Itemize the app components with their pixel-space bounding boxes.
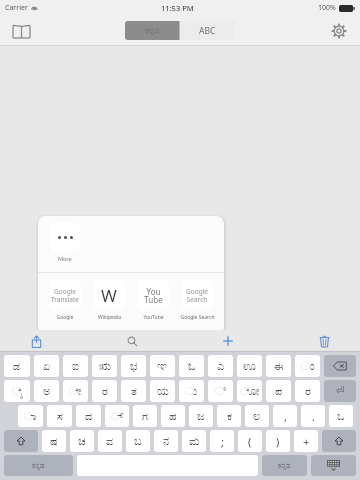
button[interactable]: ಎ: [208, 355, 233, 377]
staticText: ಸ: [57, 411, 63, 422]
staticText: ದ: [85, 411, 93, 422]
staticText: ಜ: [197, 411, 205, 422]
button[interactable]: ;: [210, 430, 234, 452]
button[interactable]: Search: [122, 331, 142, 351]
button[interactable]: ಾ: [18, 405, 43, 427]
staticText: ಡ: [13, 361, 21, 372]
staticText: ಚ: [78, 436, 86, 447]
staticText: ಬ: [134, 436, 142, 447]
button[interactable]: ದ: [76, 405, 101, 427]
button[interactable]: ಷ: [42, 430, 66, 452]
button[interactable]: Return: [324, 380, 356, 402]
button[interactable]: ಮ: [182, 430, 206, 452]
button[interactable]: ): [266, 430, 290, 452]
button[interactable]: ರ: [92, 380, 117, 402]
staticText: ು: [185, 386, 198, 397]
staticText: ,: [284, 409, 287, 424]
button[interactable]: ಹ: [161, 405, 185, 427]
button[interactable]: Shift: [4, 430, 38, 452]
button[interactable]: More: [50, 222, 80, 262]
button[interactable]: ಊ: [237, 355, 262, 377]
button[interactable]: Google Search: [178, 279, 216, 321]
button[interactable]: ಬ: [126, 430, 150, 452]
button[interactable]: ಗ: [133, 405, 157, 427]
button[interactable]: ಚ: [70, 430, 94, 452]
button[interactable]: ಋ: [92, 355, 117, 377]
button[interactable]: ನ: [154, 430, 178, 452]
button[interactable]: Delete: [314, 331, 334, 351]
staticText: ಒ: [337, 411, 345, 422]
button[interactable]: ಏ: [34, 355, 59, 377]
button[interactable]: ವ: [98, 430, 122, 452]
button[interactable]: ಕನ್ನಡ: [4, 455, 73, 476]
button[interactable]: ಐ: [63, 355, 88, 377]
staticText: ಐ: [72, 361, 80, 372]
staticText: ಕನ್ನಡ: [145, 27, 160, 35]
staticText: +: [303, 434, 310, 449]
button[interactable]: ೋ: [237, 380, 262, 402]
staticText: .: [312, 409, 315, 424]
staticText: ರ: [102, 386, 108, 397]
staticText: Google Translate: [51, 287, 79, 304]
staticText: ಅ: [43, 386, 51, 397]
button[interactable]: ಸ: [47, 405, 72, 427]
button[interactable]: Google Translate: [46, 279, 84, 321]
staticText: ೇ: [69, 386, 82, 397]
button[interactable]: ABC: [180, 21, 235, 40]
button[interactable]: Settings: [326, 18, 352, 44]
button[interactable]: .: [301, 405, 325, 427]
button[interactable]: ಓ: [179, 355, 204, 377]
staticText: Carrier: [5, 3, 28, 13]
staticText: ೈ: [12, 386, 23, 397]
staticText: ಞ: [157, 361, 168, 372]
button[interactable]: ಯ: [150, 380, 175, 402]
button[interactable]: ಪ: [266, 380, 291, 402]
button[interactable]: Add: [218, 331, 238, 351]
button[interactable]: Backspace: [324, 355, 356, 377]
button[interactable]: ರ: [295, 380, 320, 402]
staticText: ⏎: [336, 385, 345, 397]
button[interactable]: ಭ: [121, 355, 146, 377]
staticText: ಗ: [142, 411, 148, 422]
button[interactable]: ಕ: [217, 405, 241, 427]
button[interactable]: Share: [26, 331, 46, 351]
button[interactable]: ಿ: [208, 380, 233, 402]
button[interactable]: You Tube: [134, 279, 172, 321]
button[interactable]: ತ: [121, 380, 146, 402]
staticText: ವ: [106, 436, 114, 447]
button[interactable]: ು: [179, 380, 204, 402]
staticText: YouTube: [143, 314, 164, 321]
button[interactable]: ಞ: [150, 355, 175, 377]
staticText: W: [101, 284, 117, 307]
button[interactable]: ಅ: [34, 380, 59, 402]
staticText: More: [58, 255, 72, 262]
staticText: ಪ: [275, 386, 283, 397]
button[interactable]: ಕನ್ನಡ: [262, 455, 307, 476]
button[interactable]: ್: [105, 405, 129, 427]
button[interactable]: ,: [273, 405, 297, 427]
staticText: ಮ: [189, 436, 200, 447]
staticText: ರ: [305, 386, 311, 397]
button[interactable]: ಕನ್ನಡ: [125, 21, 179, 40]
button[interactable]: ೈ: [4, 380, 30, 402]
button[interactable]: ೇ: [63, 380, 88, 402]
button[interactable]: ಡ: [4, 355, 30, 377]
button[interactable]: Shift: [322, 430, 356, 452]
button[interactable]: (: [238, 430, 262, 452]
button[interactable]: ಜ: [189, 405, 213, 427]
staticText: ಕ: [227, 411, 232, 422]
staticText: ಋ: [99, 361, 111, 372]
button[interactable]: Library: [8, 18, 34, 44]
button[interactable]: +: [294, 430, 318, 452]
button[interactable]: ಈ: [266, 355, 291, 377]
button[interactable]: ಒ: [329, 405, 353, 427]
button[interactable]: Hide keyboard: [311, 455, 356, 476]
button[interactable]: ಂ: [295, 355, 320, 377]
staticText: ಎ: [217, 361, 225, 372]
button[interactable]: W: [90, 279, 128, 321]
staticText: Google Search: [180, 314, 215, 321]
button[interactable]: ಲ: [245, 405, 269, 427]
staticText: ಯ: [157, 386, 169, 397]
staticText: (: [248, 434, 252, 449]
